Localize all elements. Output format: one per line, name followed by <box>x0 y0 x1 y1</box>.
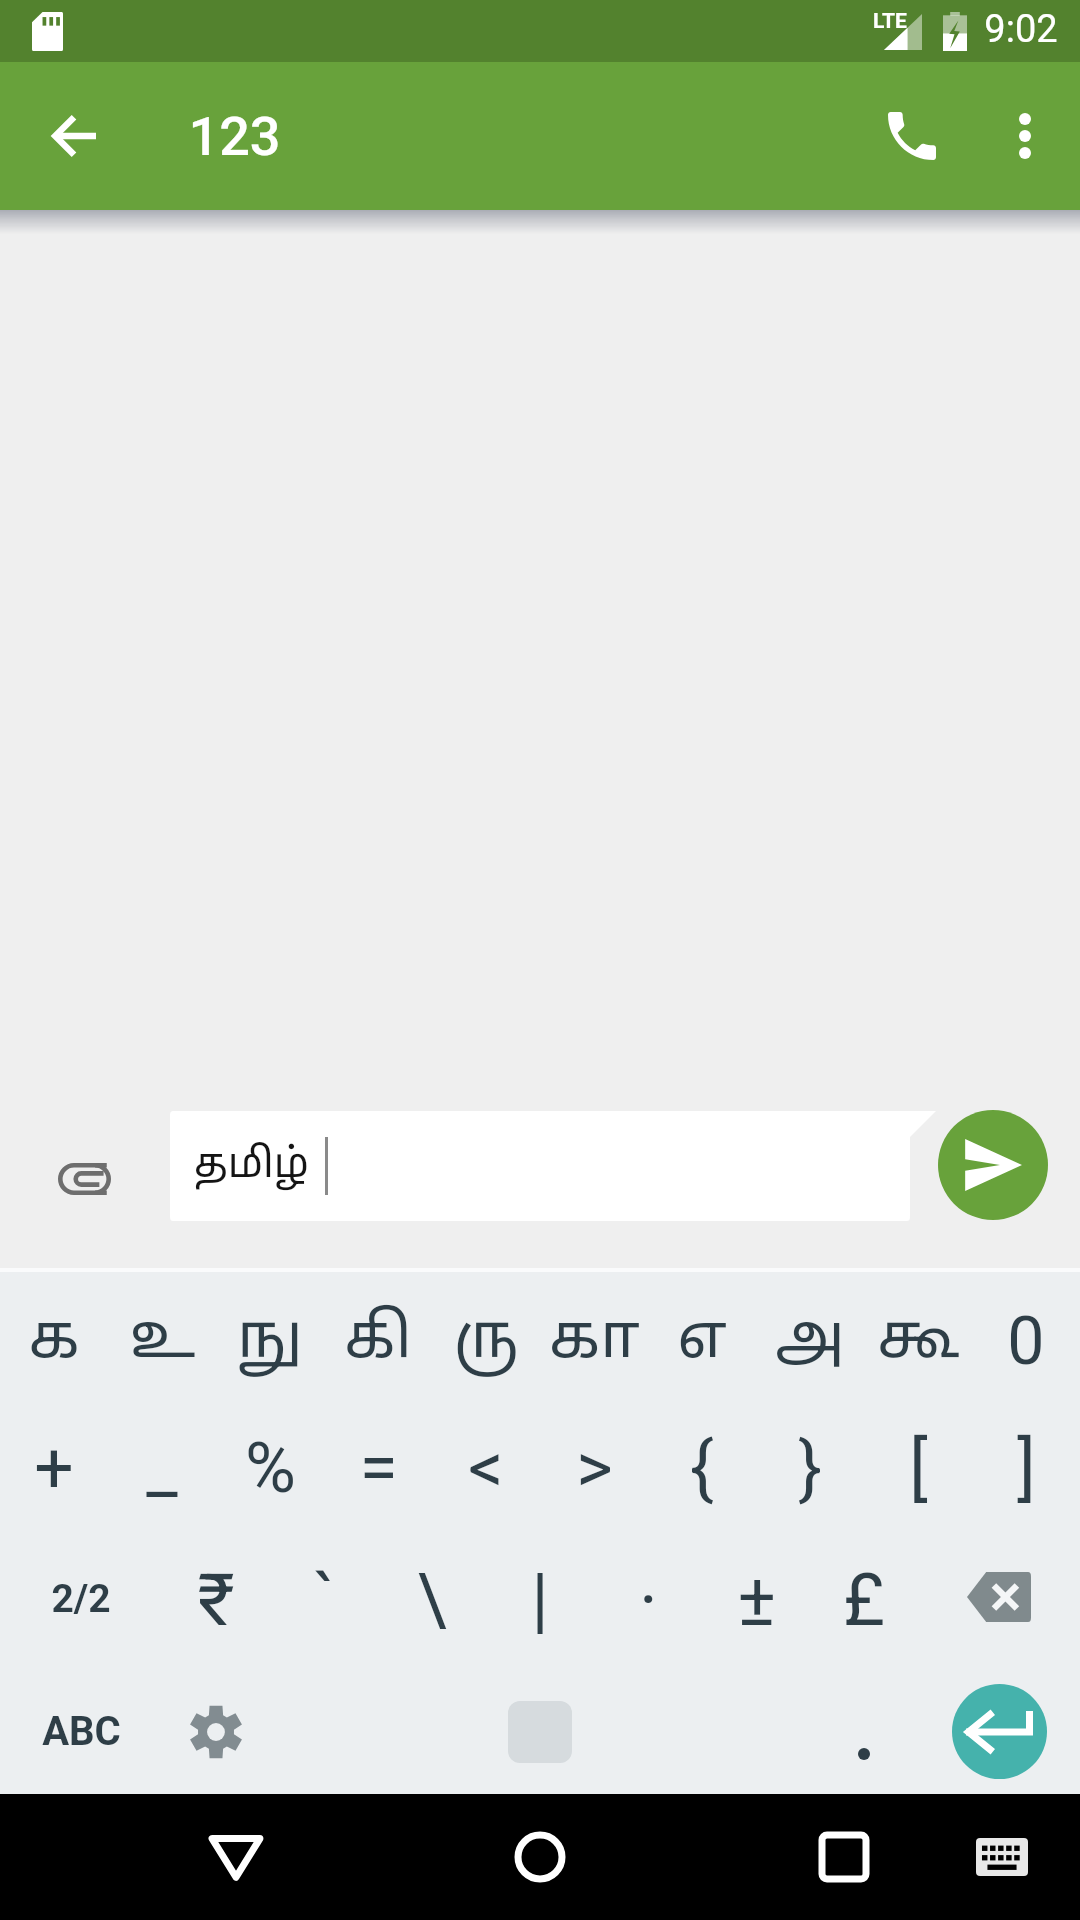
button[interactable]: Home <box>490 1807 590 1907</box>
staticText: 123 <box>188 105 281 168</box>
staticText: தமிழ் <box>194 1141 309 1192</box>
button[interactable]: உ <box>108 1272 216 1410</box>
button[interactable]: Space <box>270 1669 810 1794</box>
staticText: 0 <box>1007 1302 1045 1380</box>
staticText: · <box>639 1558 658 1642</box>
staticText: = <box>359 1427 398 1509</box>
button[interactable]: ABC <box>0 1669 162 1794</box>
button[interactable]: ரு <box>432 1272 540 1410</box>
staticText: ரு <box>453 1303 519 1380</box>
staticText: % <box>245 1427 296 1509</box>
staticText: கா <box>549 1303 640 1380</box>
button[interactable]: Back <box>186 1807 286 1907</box>
staticText: ₹ <box>197 1558 235 1642</box>
staticText: | <box>531 1558 549 1642</box>
button[interactable]: Settings <box>162 1669 270 1794</box>
staticText: நு <box>237 1303 303 1380</box>
button[interactable]: ± <box>702 1539 810 1669</box>
button[interactable]: = <box>324 1410 432 1539</box>
staticText: க <box>28 1303 80 1380</box>
staticText: { <box>690 1427 714 1509</box>
button[interactable]: \ <box>378 1539 486 1669</box>
button[interactable]: 2/2 <box>0 1539 162 1669</box>
button[interactable]: கா <box>540 1272 648 1410</box>
button[interactable]: Backspace <box>918 1539 1080 1669</box>
button[interactable]: Recents <box>794 1807 894 1907</box>
staticText: கி <box>344 1303 412 1380</box>
button[interactable]: Attach <box>38 1133 130 1225</box>
staticText: } <box>798 1427 822 1509</box>
button[interactable]: | <box>486 1539 594 1669</box>
staticText: ` <box>313 1558 336 1642</box>
staticText: ABC <box>42 1708 121 1755</box>
staticText: £ <box>843 1558 885 1642</box>
button[interactable]: Call <box>862 86 962 186</box>
staticText: ± <box>737 1558 776 1642</box>
button[interactable]: } <box>756 1410 864 1539</box>
button[interactable]: < <box>432 1410 540 1539</box>
staticText: உ <box>129 1303 196 1380</box>
button[interactable]: எ <box>648 1272 756 1410</box>
staticText: + <box>34 1427 74 1509</box>
button[interactable]: ` <box>270 1539 378 1669</box>
button[interactable]: நு <box>216 1272 324 1410</box>
button[interactable]: கூ <box>864 1272 972 1410</box>
button[interactable]: Switch keyboard <box>952 1807 1052 1907</box>
button[interactable]: 0 <box>972 1272 1080 1410</box>
button[interactable]: · <box>594 1539 702 1669</box>
staticText: 9:02 <box>984 7 1058 52</box>
button[interactable]: % <box>216 1410 324 1539</box>
staticText: _ <box>146 1427 178 1509</box>
button[interactable]: _ <box>108 1410 216 1539</box>
staticText: கூ <box>877 1303 960 1380</box>
staticText: எ <box>677 1303 727 1380</box>
button[interactable]: க <box>0 1272 108 1410</box>
button[interactable]: ₹ <box>162 1539 270 1669</box>
staticText: LTE <box>873 9 907 34</box>
button[interactable]: [ <box>864 1410 972 1539</box>
button[interactable] <box>810 1669 918 1794</box>
button[interactable]: { <box>648 1410 756 1539</box>
button[interactable]: Back <box>24 86 124 186</box>
staticText: [ <box>909 1427 928 1509</box>
staticText: 2/2 <box>51 1576 111 1622</box>
button[interactable]: ] <box>972 1410 1080 1539</box>
button[interactable]: கி <box>324 1272 432 1410</box>
staticText: \ <box>417 1558 447 1642</box>
staticText: < <box>468 1427 504 1509</box>
staticText: ] <box>1017 1427 1036 1509</box>
staticText: அ <box>775 1303 845 1380</box>
button[interactable]: + <box>0 1410 108 1539</box>
button[interactable]: > <box>540 1410 648 1539</box>
button[interactable]: More options <box>970 86 1080 186</box>
button[interactable]: Send <box>938 1110 1048 1220</box>
button[interactable]: Enter <box>918 1669 1080 1794</box>
staticText: > <box>576 1427 613 1509</box>
button[interactable]: £ <box>810 1539 918 1669</box>
button[interactable]: அ <box>756 1272 864 1410</box>
